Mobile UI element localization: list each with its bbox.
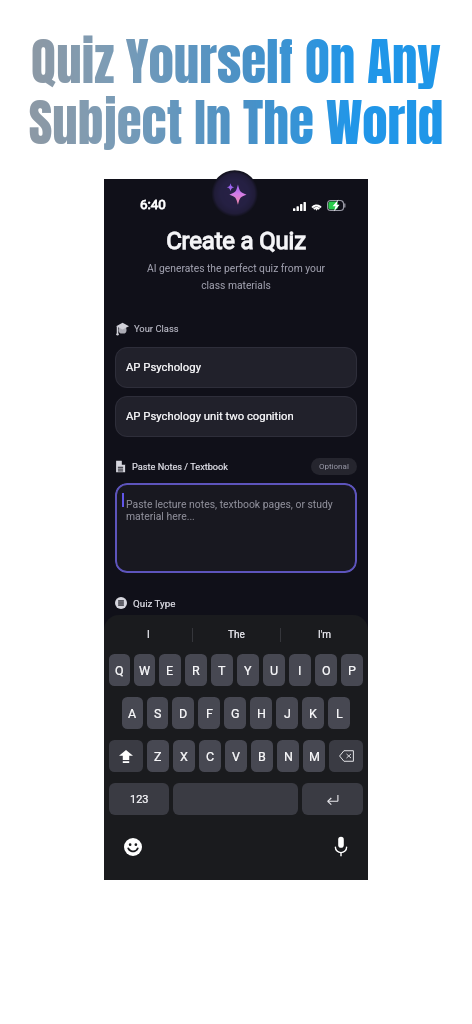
button[interactable]: I <box>289 654 311 686</box>
staticText: Quiz Type <box>133 598 176 609</box>
button[interactable]: T <box>211 654 233 686</box>
button[interactable]: H <box>250 697 272 729</box>
staticText: The <box>228 629 245 641</box>
staticText: X <box>180 749 188 764</box>
button[interactable]: D <box>172 697 194 729</box>
button[interactable]: AP Psychology <box>115 347 357 388</box>
staticText: N <box>284 749 293 764</box>
button[interactable]: Y <box>237 654 259 686</box>
button[interactable]: Enter <box>302 783 363 815</box>
staticText: Q <box>115 663 124 678</box>
other: Emoji <box>124 838 142 856</box>
button[interactable]: AP Psychology unit two cognition <box>115 396 357 437</box>
button[interactable]: M <box>303 740 325 772</box>
staticText: AI generates the perfect quiz from your … <box>122 262 350 292</box>
staticText: G <box>231 706 240 721</box>
staticText: Z <box>154 749 162 764</box>
button[interactable]: Paste lecture notes, textbook pages, or … <box>115 483 357 573</box>
button[interactable]: O <box>315 654 337 686</box>
button[interactable]: The <box>193 615 280 654</box>
button[interactable]: E <box>159 654 181 686</box>
staticText: W <box>139 663 151 678</box>
staticText: S <box>154 706 162 721</box>
staticText: I'm <box>318 629 332 641</box>
staticText: I <box>298 663 302 678</box>
staticText: Paste Notes / Textbook <box>132 461 228 472</box>
staticText: F <box>206 706 213 721</box>
staticText: Optional <box>319 462 349 471</box>
button[interactable]: V <box>225 740 247 772</box>
button[interactable]: I'm <box>281 615 368 654</box>
staticText: E <box>166 663 174 678</box>
button[interactable]: I <box>104 615 192 654</box>
staticText: Quiz Yourself On Any Subject In The Worl… <box>0 23 472 160</box>
button[interactable]: Q <box>109 654 130 686</box>
button[interactable]: R <box>185 654 207 686</box>
other: Voice input <box>334 836 348 857</box>
button[interactable]: Shift <box>109 740 143 772</box>
button[interactable]: P <box>341 654 363 686</box>
staticText: Your Class <box>134 323 179 334</box>
staticText: 6:40 <box>140 197 166 213</box>
button[interactable]: J <box>276 697 298 729</box>
staticText: M <box>309 749 320 764</box>
staticText: AP Psychology <box>126 361 201 374</box>
staticText: H <box>257 706 266 721</box>
staticText: V <box>232 749 240 764</box>
staticText: Create a Quiz <box>104 227 368 255</box>
staticText: J <box>284 706 291 721</box>
staticText: L <box>336 706 343 721</box>
button[interactable]: Backspace <box>329 740 363 772</box>
button[interactable]: Space <box>173 783 298 815</box>
staticText: Y <box>244 663 252 678</box>
staticText: U <box>270 663 279 678</box>
button[interactable]: L <box>328 697 350 729</box>
staticText: AP Psychology unit two cognition <box>126 410 294 423</box>
staticText: B <box>258 749 266 764</box>
button[interactable]: N <box>277 740 299 772</box>
staticText: K <box>309 706 317 721</box>
button[interactable]: G <box>224 697 246 729</box>
button[interactable]: F <box>198 697 220 729</box>
staticText: P <box>348 663 356 678</box>
staticText: I <box>147 629 150 641</box>
staticText: A <box>128 706 137 721</box>
button[interactable]: X <box>173 740 195 772</box>
staticText: 123 <box>130 793 149 806</box>
staticText: Paste lecture notes, textbook pages, or … <box>126 498 333 523</box>
staticText: R <box>192 663 200 678</box>
button[interactable]: 123 <box>109 783 169 815</box>
staticText: O <box>322 663 331 678</box>
button[interactable]: B <box>251 740 273 772</box>
button[interactable]: U <box>263 654 285 686</box>
button[interactable]: A <box>122 697 143 729</box>
button[interactable]: K <box>302 697 324 729</box>
button[interactable]: S <box>147 697 168 729</box>
button[interactable]: C <box>199 740 221 772</box>
button[interactable]: Optional <box>311 458 357 475</box>
staticText: D <box>179 706 188 721</box>
button[interactable]: W <box>134 654 155 686</box>
button[interactable]: Z <box>147 740 169 772</box>
staticText: T <box>218 663 226 678</box>
staticText: C <box>206 749 215 764</box>
